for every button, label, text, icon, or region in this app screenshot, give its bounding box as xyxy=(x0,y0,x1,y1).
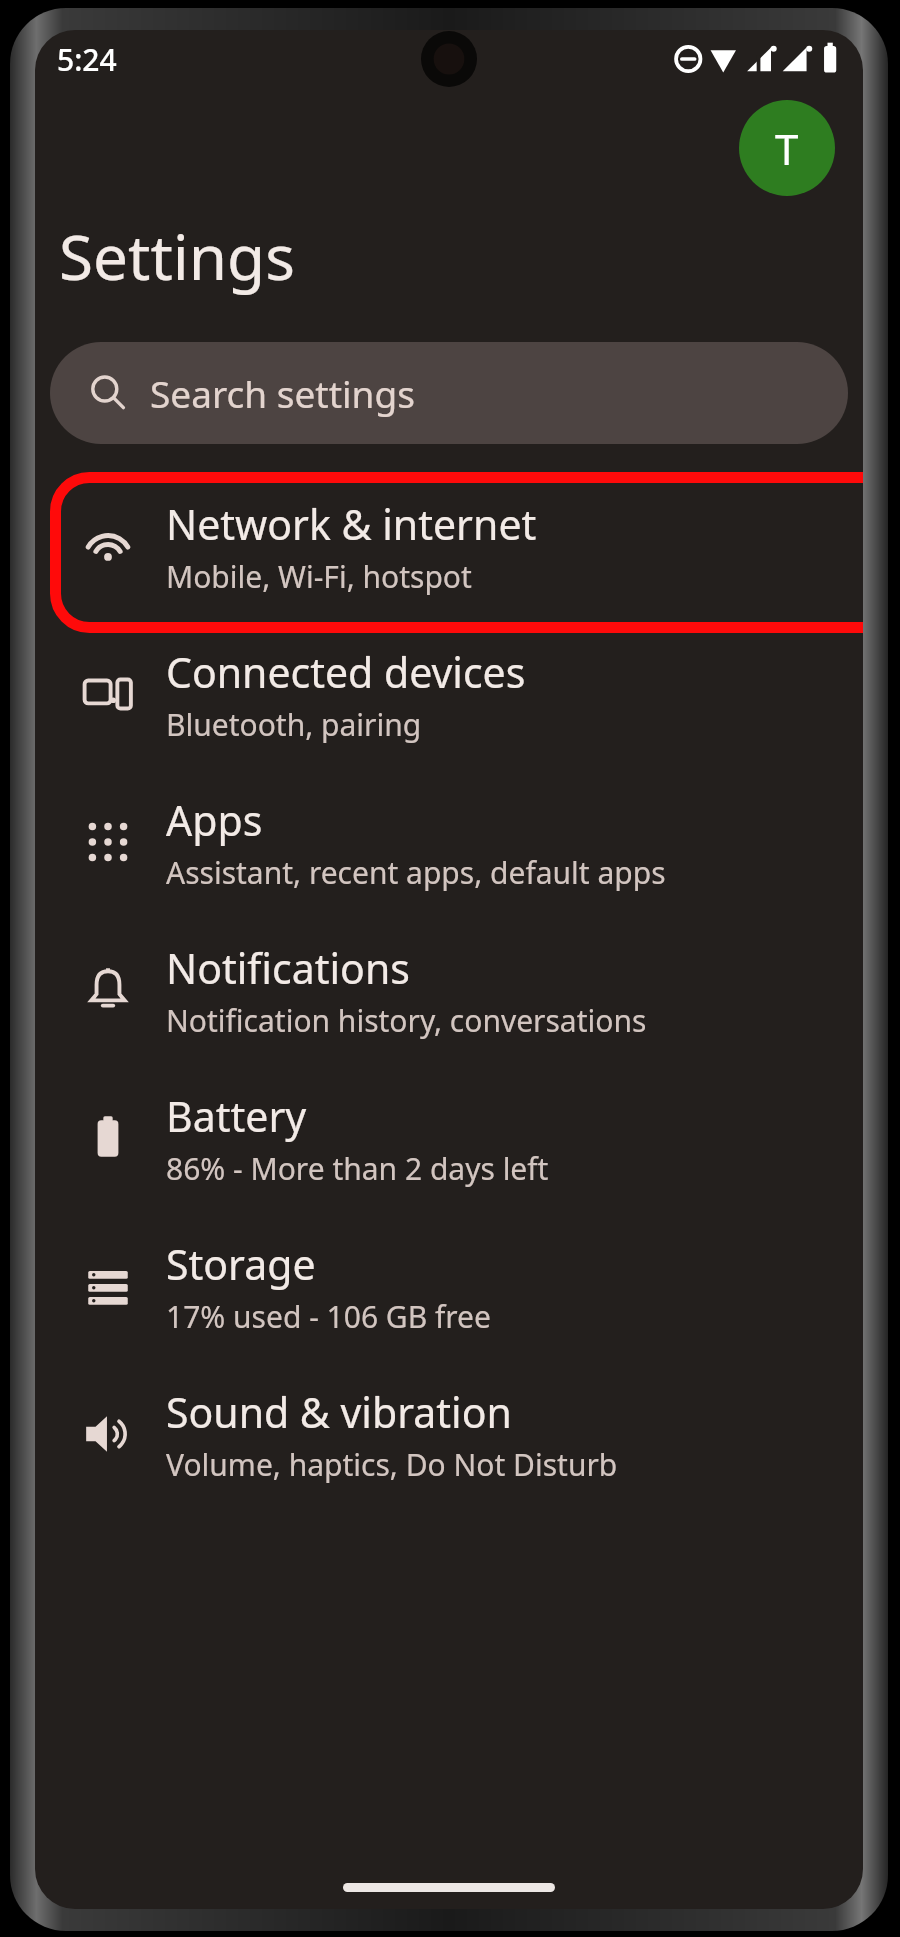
staticText: Volume, haptics, Do Not Disturb xyxy=(166,1444,618,1485)
staticText: T xyxy=(775,120,799,177)
staticText: Connected devices xyxy=(166,644,526,700)
button[interactable]: Apps xyxy=(35,768,863,916)
staticText: Sound & vibration xyxy=(166,1384,512,1440)
staticText: 5:24 xyxy=(57,39,117,80)
staticText: Bluetooth, pairing xyxy=(166,704,422,745)
staticText: Settings xyxy=(59,214,295,298)
staticText: Mobile, Wi-Fi, hotspot xyxy=(166,556,472,597)
staticText: Battery xyxy=(166,1088,307,1144)
staticText: Storage xyxy=(166,1236,316,1292)
staticText: 17% used - 106 GB free xyxy=(166,1296,491,1337)
button[interactable]: Search settings xyxy=(50,342,848,444)
staticText: Assistant, recent apps, default apps xyxy=(166,852,666,893)
staticText: Notification history, conversations xyxy=(166,1000,647,1041)
button[interactable]: Sound & vibration xyxy=(35,1360,863,1508)
staticText: Network & internet xyxy=(166,496,537,552)
staticText: Search settings xyxy=(150,368,415,418)
button[interactable]: Connected devices xyxy=(35,620,863,768)
staticText: 86% - More than 2 days left xyxy=(166,1148,549,1189)
button[interactable]: Account xyxy=(739,100,835,196)
button[interactable]: Network & internet xyxy=(35,472,863,620)
staticText: Notifications xyxy=(166,940,410,996)
staticText: Apps xyxy=(166,792,263,848)
button[interactable]: Storage xyxy=(35,1212,863,1360)
button[interactable]: Notifications xyxy=(35,916,863,1064)
button[interactable]: Battery xyxy=(35,1064,863,1212)
